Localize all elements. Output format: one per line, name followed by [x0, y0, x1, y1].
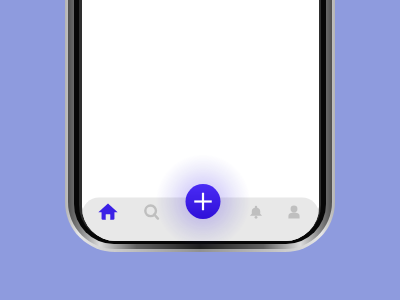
button[interactable]: Search — [135, 196, 169, 230]
button[interactable]: Home — [91, 196, 125, 230]
button[interactable]: Profile — [277, 196, 311, 230]
button[interactable]: Add — [184, 183, 222, 221]
button[interactable]: Notifications — [239, 196, 273, 230]
